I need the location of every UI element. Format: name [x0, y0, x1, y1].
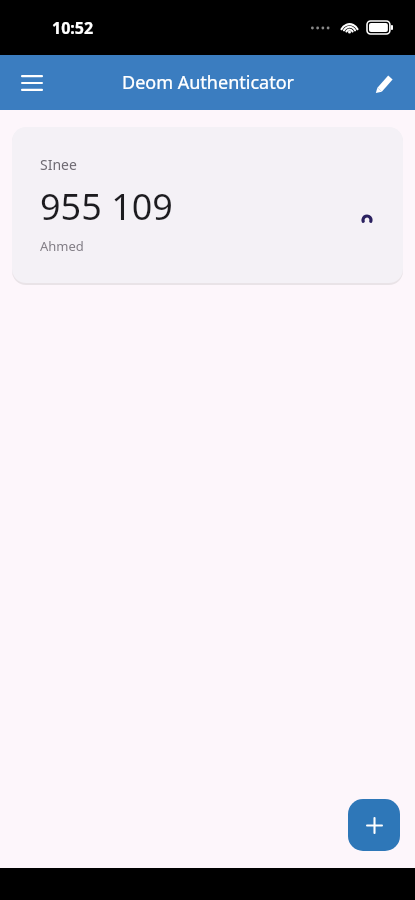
staticText: 955 109 [40, 182, 173, 231]
button[interactable]: SInee [12, 127, 403, 283]
button[interactable]: Edit [361, 59, 409, 107]
staticText: 10:52 [52, 17, 94, 39]
staticText: Ahmed [40, 237, 84, 255]
staticText: Deom Authenticator [122, 70, 294, 95]
button[interactable]: Open navigation menu [8, 59, 56, 107]
staticText: SInee [40, 155, 77, 174]
button[interactable]: Add account [348, 799, 400, 851]
